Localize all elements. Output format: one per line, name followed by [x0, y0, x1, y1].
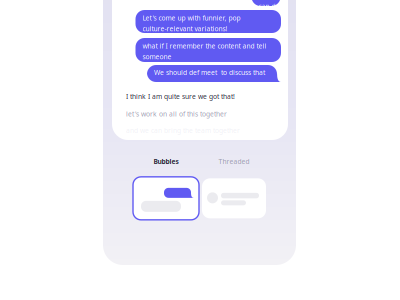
staticText: what if I remember the content and tell … — [142, 41, 266, 61]
staticText: and we can bring the team together — [126, 126, 240, 135]
button[interactable]: Bubbles layout — [133, 177, 199, 220]
staticText: I think I am quite sure we got that! — [126, 92, 235, 101]
staticText: We should def meet to discuss that — [154, 68, 265, 77]
button[interactable]: Threaded layout — [202, 178, 266, 218]
staticText: Let's come up with funnier, pop culture-… — [142, 13, 240, 33]
staticText: Sure, I can do that too — [258, 0, 282, 21]
staticText: let's work on all of this together — [126, 109, 227, 118]
staticText: Threaded — [218, 157, 249, 166]
staticText: Bubbles — [153, 157, 178, 166]
